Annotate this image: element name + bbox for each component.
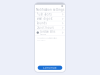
button[interactable]: Quiet hours bbox=[34, 26, 65, 30]
button[interactable]: Continue bbox=[34, 66, 65, 72]
button[interactable]: Jordan Ellis bbox=[34, 30, 65, 35]
staticText: Quiet hours bbox=[37, 26, 54, 29]
button[interactable]: Push alerts bbox=[34, 12, 65, 16]
staticText: Signed in bbox=[40, 33, 46, 35]
staticText: Sounds bbox=[37, 21, 47, 25]
staticText: Push alerts bbox=[37, 13, 52, 16]
staticText: Learn more bbox=[37, 39, 46, 41]
staticText: Continue bbox=[43, 66, 57, 69]
button[interactable]: Sounds bbox=[34, 21, 65, 25]
staticText: Change these anytime in Settings bbox=[37, 37, 58, 39]
staticText: Jordan Ellis bbox=[40, 30, 55, 33]
staticText: Notification settings bbox=[36, 8, 64, 11]
staticText: Email digest bbox=[37, 17, 53, 20]
button[interactable]: Email digest bbox=[34, 17, 65, 21]
